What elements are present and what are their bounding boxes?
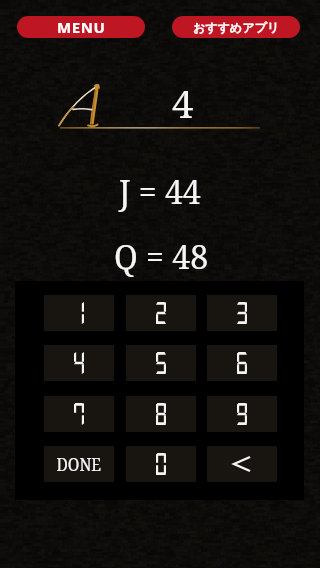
button[interactable] [207, 396, 277, 432]
staticText: おすすめアプリ [193, 20, 279, 35]
button[interactable]: DONE [44, 446, 114, 482]
button[interactable] [126, 446, 196, 482]
button[interactable] [207, 345, 277, 381]
button[interactable] [207, 446, 277, 482]
staticText: MENU [57, 17, 106, 37]
staticText: J = 44 [119, 170, 201, 214]
staticText: 4 [172, 77, 194, 129]
staticText: DONE [56, 452, 102, 477]
button[interactable]: おすすめアプリ [172, 16, 300, 38]
button[interactable] [126, 345, 196, 381]
staticText: Q = 48 [114, 235, 209, 279]
button[interactable]: MENU [17, 16, 145, 38]
button[interactable] [44, 295, 114, 331]
button[interactable] [126, 295, 196, 331]
button[interactable] [44, 345, 114, 381]
button[interactable] [44, 396, 114, 432]
button[interactable] [126, 396, 196, 432]
button[interactable] [207, 295, 277, 331]
